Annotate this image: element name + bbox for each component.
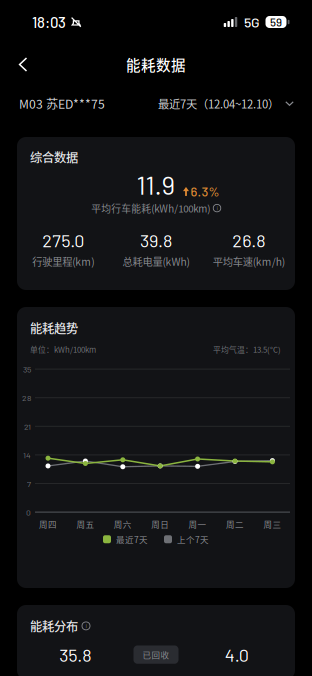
staticText: 4.0 bbox=[225, 644, 249, 665]
staticText: 周三 bbox=[263, 518, 281, 530]
staticText: 平均车速(km/h) bbox=[213, 254, 285, 269]
staticText: 能耗分布 bbox=[30, 617, 78, 635]
staticText: 周一 bbox=[189, 518, 207, 530]
staticText: 11.9 bbox=[136, 169, 175, 200]
staticText: 7 bbox=[27, 478, 31, 489]
staticText: 周二 bbox=[226, 518, 244, 530]
staticText: 59 bbox=[270, 15, 282, 29]
staticText: 上个7天 bbox=[177, 533, 209, 545]
staticText: 39.8 bbox=[140, 229, 172, 251]
staticText: 275.0 bbox=[42, 229, 84, 251]
staticText: 14 bbox=[23, 450, 31, 460]
staticText: 周六 bbox=[114, 518, 132, 530]
staticText: 周日 bbox=[151, 518, 169, 530]
staticText: 最近7天（12.04~12.10） bbox=[158, 95, 279, 112]
staticText: M03 苏ED***75 bbox=[19, 95, 105, 112]
staticText: i bbox=[216, 205, 217, 211]
staticText: 能耗趋势 bbox=[30, 319, 78, 337]
staticText: 28 bbox=[22, 393, 31, 403]
staticText: 平均行车能耗(kWh/100km) bbox=[91, 201, 210, 215]
button[interactable]: 最近7天（12.04~12.10） bbox=[158, 88, 294, 119]
staticText: 5G bbox=[244, 14, 260, 30]
staticText: 周五 bbox=[76, 518, 94, 530]
staticText: 综合数据 bbox=[30, 148, 78, 166]
staticText: 能耗数据 bbox=[126, 54, 186, 75]
staticText: 26.8 bbox=[232, 229, 265, 251]
staticText: 35.8 bbox=[59, 644, 91, 665]
staticText: 18:03 bbox=[32, 13, 66, 31]
button[interactable]: M03 苏ED***75 bbox=[19, 88, 105, 119]
staticText: 最近7天 bbox=[116, 533, 148, 545]
staticText: 35 bbox=[23, 364, 31, 374]
staticText: 周四 bbox=[39, 518, 57, 530]
staticText: 单位：kWh/100km bbox=[30, 344, 96, 355]
staticText: 总耗电量(kWh) bbox=[122, 254, 189, 269]
staticText: 平均气温：13.5(°C) bbox=[213, 344, 281, 355]
staticText: 行驶里程(km) bbox=[32, 254, 94, 269]
staticText: 已回收 bbox=[142, 648, 169, 661]
staticText: 21 bbox=[24, 421, 31, 431]
button[interactable]: Back bbox=[0, 46, 41, 82]
staticText: 0 bbox=[26, 507, 31, 517]
staticText: 6.3% bbox=[190, 183, 219, 199]
